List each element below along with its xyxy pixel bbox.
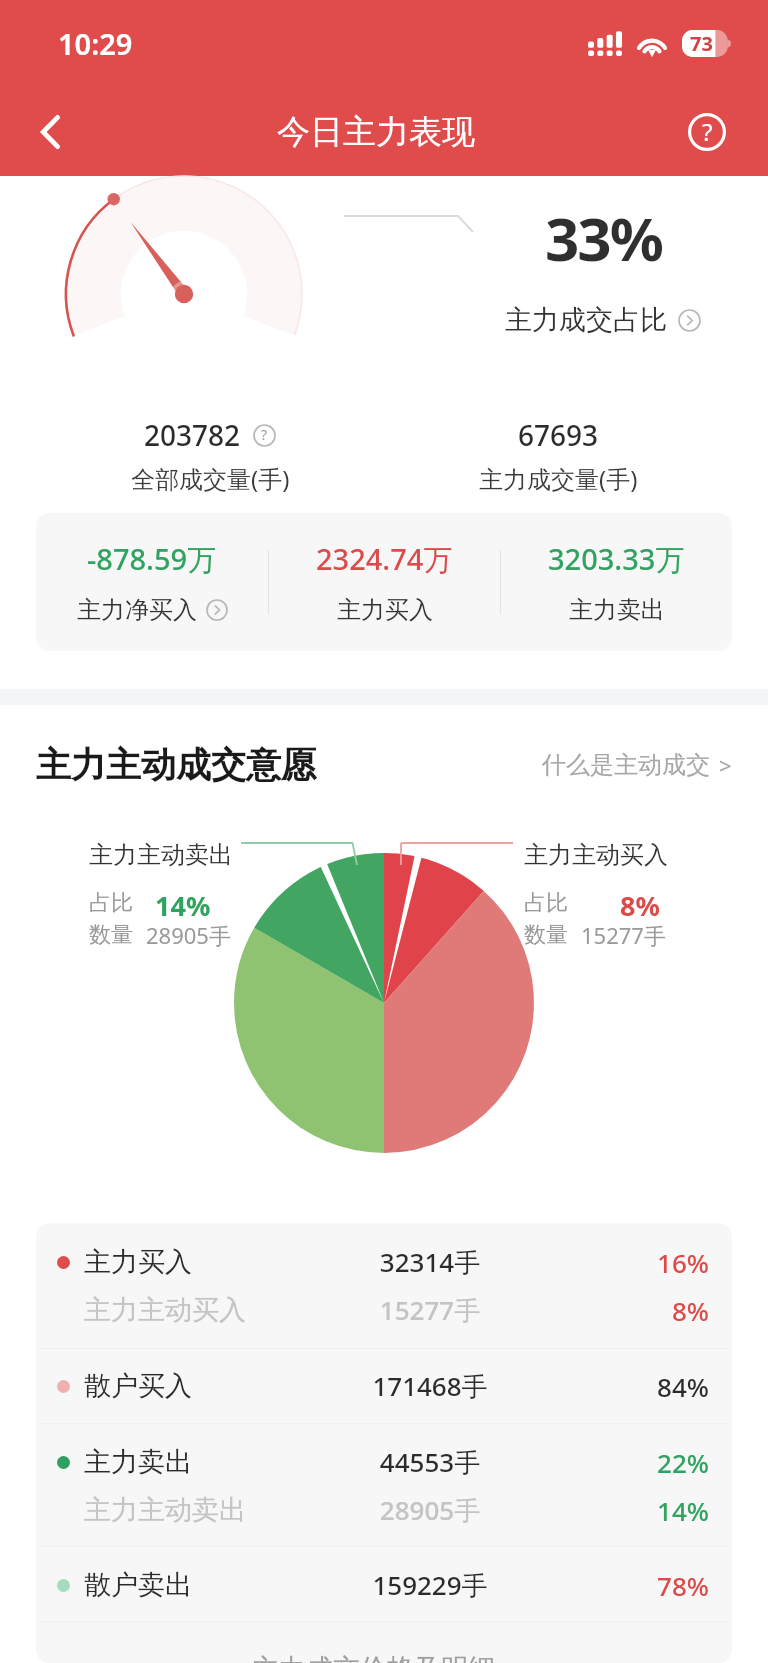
button[interactable]: Help	[685, 110, 729, 154]
staticText: 8%	[619, 1293, 709, 1328]
staticText: 2324.74万	[316, 539, 453, 579]
staticText: >	[719, 750, 732, 780]
staticText: -878.59万	[87, 539, 217, 579]
button[interactable]: 主力主动卖出	[36, 1486, 732, 1534]
staticText: 主力主动买入	[524, 840, 668, 870]
staticText: 28905手	[146, 920, 231, 950]
staticText: 今日主力表现	[277, 111, 475, 153]
staticText: 3203.33万	[548, 539, 685, 579]
staticText: 全部成交量(手)	[131, 462, 290, 495]
button[interactable]: Back	[22, 104, 78, 160]
staticText: 散户买入	[84, 1369, 192, 1403]
button[interactable]: -878.59万	[36, 539, 268, 625]
staticText: 22%	[619, 1445, 709, 1480]
staticText: ?	[261, 425, 268, 444]
staticText: 67693	[518, 416, 599, 454]
button[interactable]: 主力主动买入	[36, 1286, 732, 1334]
staticText: 33%	[545, 197, 662, 279]
staticText: 占比	[524, 889, 568, 917]
staticText: 主力主动卖出	[89, 840, 233, 870]
button[interactable]: 主力成交占比	[505, 303, 701, 337]
staticText: 10:29	[58, 24, 133, 63]
staticText: ?	[702, 115, 713, 148]
staticText: 主力净买入	[77, 595, 197, 625]
staticText: 14%	[155, 887, 211, 919]
staticText: 主力主动成交意愿	[36, 743, 316, 787]
button[interactable]: 主力买入	[36, 1238, 732, 1286]
staticText: 16%	[619, 1245, 709, 1280]
staticText: 14%	[619, 1493, 709, 1528]
staticText: 32314手	[290, 1244, 570, 1280]
staticText: 数量	[524, 921, 568, 949]
staticText: 159229手	[290, 1567, 570, 1603]
staticText: 主力成交占比	[505, 303, 667, 337]
staticText: 主力卖出	[569, 595, 665, 625]
staticText: 主力主动卖出	[84, 1493, 246, 1527]
staticText: 主力买入	[84, 1245, 192, 1279]
staticText: 15277手	[290, 1292, 570, 1328]
staticText: 主力主动买入	[84, 1293, 246, 1327]
staticText: 数量	[89, 921, 133, 949]
button[interactable]: 主力卖出	[36, 1438, 732, 1486]
staticText: 什么是主动成交	[542, 750, 710, 780]
staticText: 84%	[619, 1369, 709, 1404]
staticText: 28905手	[290, 1492, 570, 1528]
staticText: 15277手	[581, 920, 666, 950]
staticText: 主力成交价格及明细	[252, 1652, 495, 1663]
staticText: 44553手	[290, 1444, 570, 1480]
staticText: 171468手	[290, 1368, 570, 1404]
staticText: 占比	[89, 889, 133, 917]
staticText: 203782	[144, 416, 241, 454]
staticText: 主力卖出	[84, 1445, 192, 1479]
button[interactable]: 散户卖出	[36, 1561, 732, 1609]
staticText: 8%	[620, 887, 660, 919]
button[interactable]: 散户买入	[36, 1362, 732, 1410]
button[interactable]: 什么是主动成交	[542, 750, 732, 780]
staticText: 78%	[619, 1568, 709, 1603]
staticText: 主力买入	[337, 595, 433, 625]
staticText: 73	[690, 30, 713, 57]
staticText: 主力成交量(手)	[479, 462, 638, 495]
button[interactable]: 主力成交价格及明细	[36, 1622, 732, 1663]
staticText: 散户卖出	[84, 1568, 192, 1602]
